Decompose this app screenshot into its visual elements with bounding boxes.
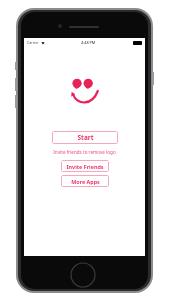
button[interactable]: Start [52,131,118,144]
staticText: Invite friends to remove logo [24,149,145,155]
button[interactable]: Invite Friends [61,160,109,172]
button[interactable]: More Apps [61,175,109,187]
staticText: Invite Friends [66,163,104,170]
staticText: 4:48 PM [81,40,96,45]
staticText: Carrier [27,40,39,45]
staticText: More Apps [71,178,100,185]
staticText: Start [77,133,94,142]
